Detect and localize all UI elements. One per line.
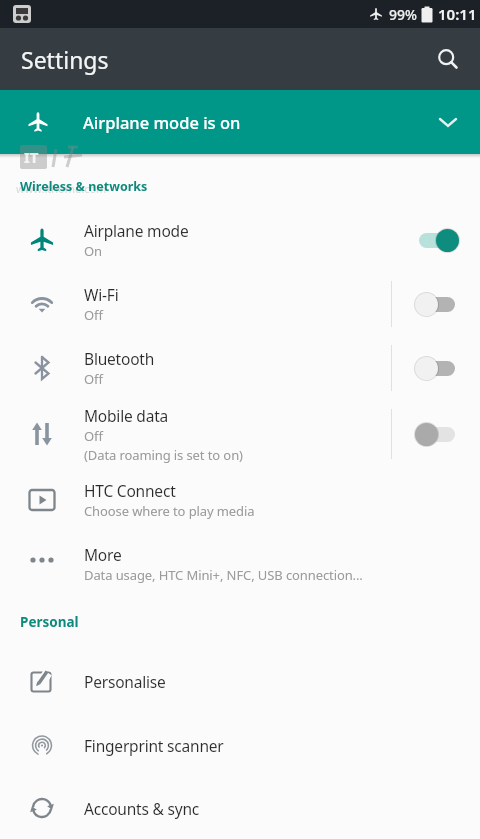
staticText: Airplane mode [84,220,189,241]
button[interactable]: Bluetooth [0,336,480,400]
staticText: Fingerprint scanner [84,735,224,756]
button[interactable]: Mobile data [0,400,480,468]
staticText: On [84,242,102,260]
staticText: More [84,544,122,565]
staticText: Wireless & networks [20,178,148,195]
button[interactable]: Personalise [0,649,480,713]
button[interactable]: HTC Connect [0,468,480,532]
button[interactable]: Accounts & sync [0,777,480,839]
staticText: Off [84,427,103,445]
button[interactable]: Wi-Fi [0,272,480,336]
staticText: 99% [389,5,417,24]
staticText: IT [24,147,39,167]
staticText: Airplane mode is on [83,111,241,133]
staticText: Personalise [84,671,166,692]
staticText: Data usage, HTC Mini+, NFC, USB connecti… [84,566,363,584]
button[interactable]: More [0,532,480,596]
staticText: www.ithome.com [16,181,107,196]
button[interactable]: Airplane mode is on [0,90,480,154]
staticText: Mobile data [84,405,169,426]
button[interactable]: Airplane mode [0,208,480,272]
staticText: 10:11 [438,4,477,24]
button[interactable]: Fingerprint scanner [0,713,480,777]
staticText: Choose where to play media [84,502,255,520]
staticText: Settings [21,44,109,75]
staticText: Off [84,306,103,324]
staticText: (Data roaming is set to on) [84,446,243,464]
staticText: Accounts & sync [84,798,200,819]
staticText: HTC Connect [84,480,176,501]
staticText: Off [84,370,103,388]
staticText: Bluetooth [84,348,155,369]
staticText: Personal [20,613,79,631]
button[interactable] [424,35,472,83]
staticText: Wi-Fi [84,284,119,305]
